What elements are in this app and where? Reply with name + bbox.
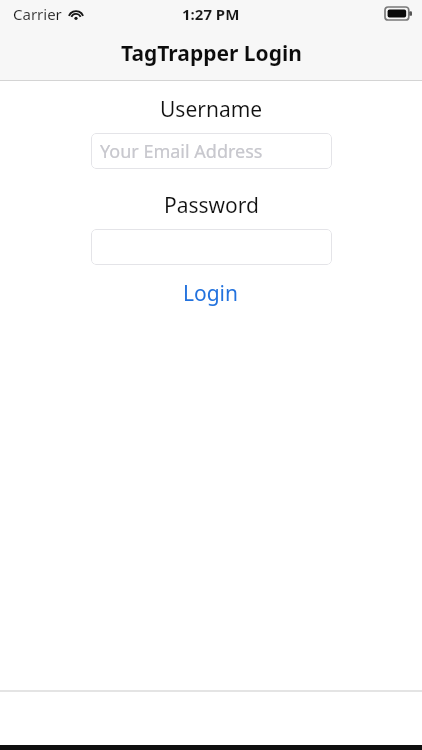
- button[interactable]: Password field: [91, 229, 332, 265]
- staticText: Password: [164, 191, 259, 220]
- staticText: Your Email Address: [100, 139, 263, 164]
- staticText: 1:27 PM: [182, 4, 240, 24]
- staticText: Carrier: [13, 4, 62, 24]
- button[interactable]: Username field: [91, 133, 332, 169]
- staticText: Username: [160, 95, 263, 124]
- staticText: Login: [183, 279, 239, 308]
- button[interactable]: Login: [155, 276, 267, 310]
- staticText: TagTrapper Login: [121, 39, 302, 68]
